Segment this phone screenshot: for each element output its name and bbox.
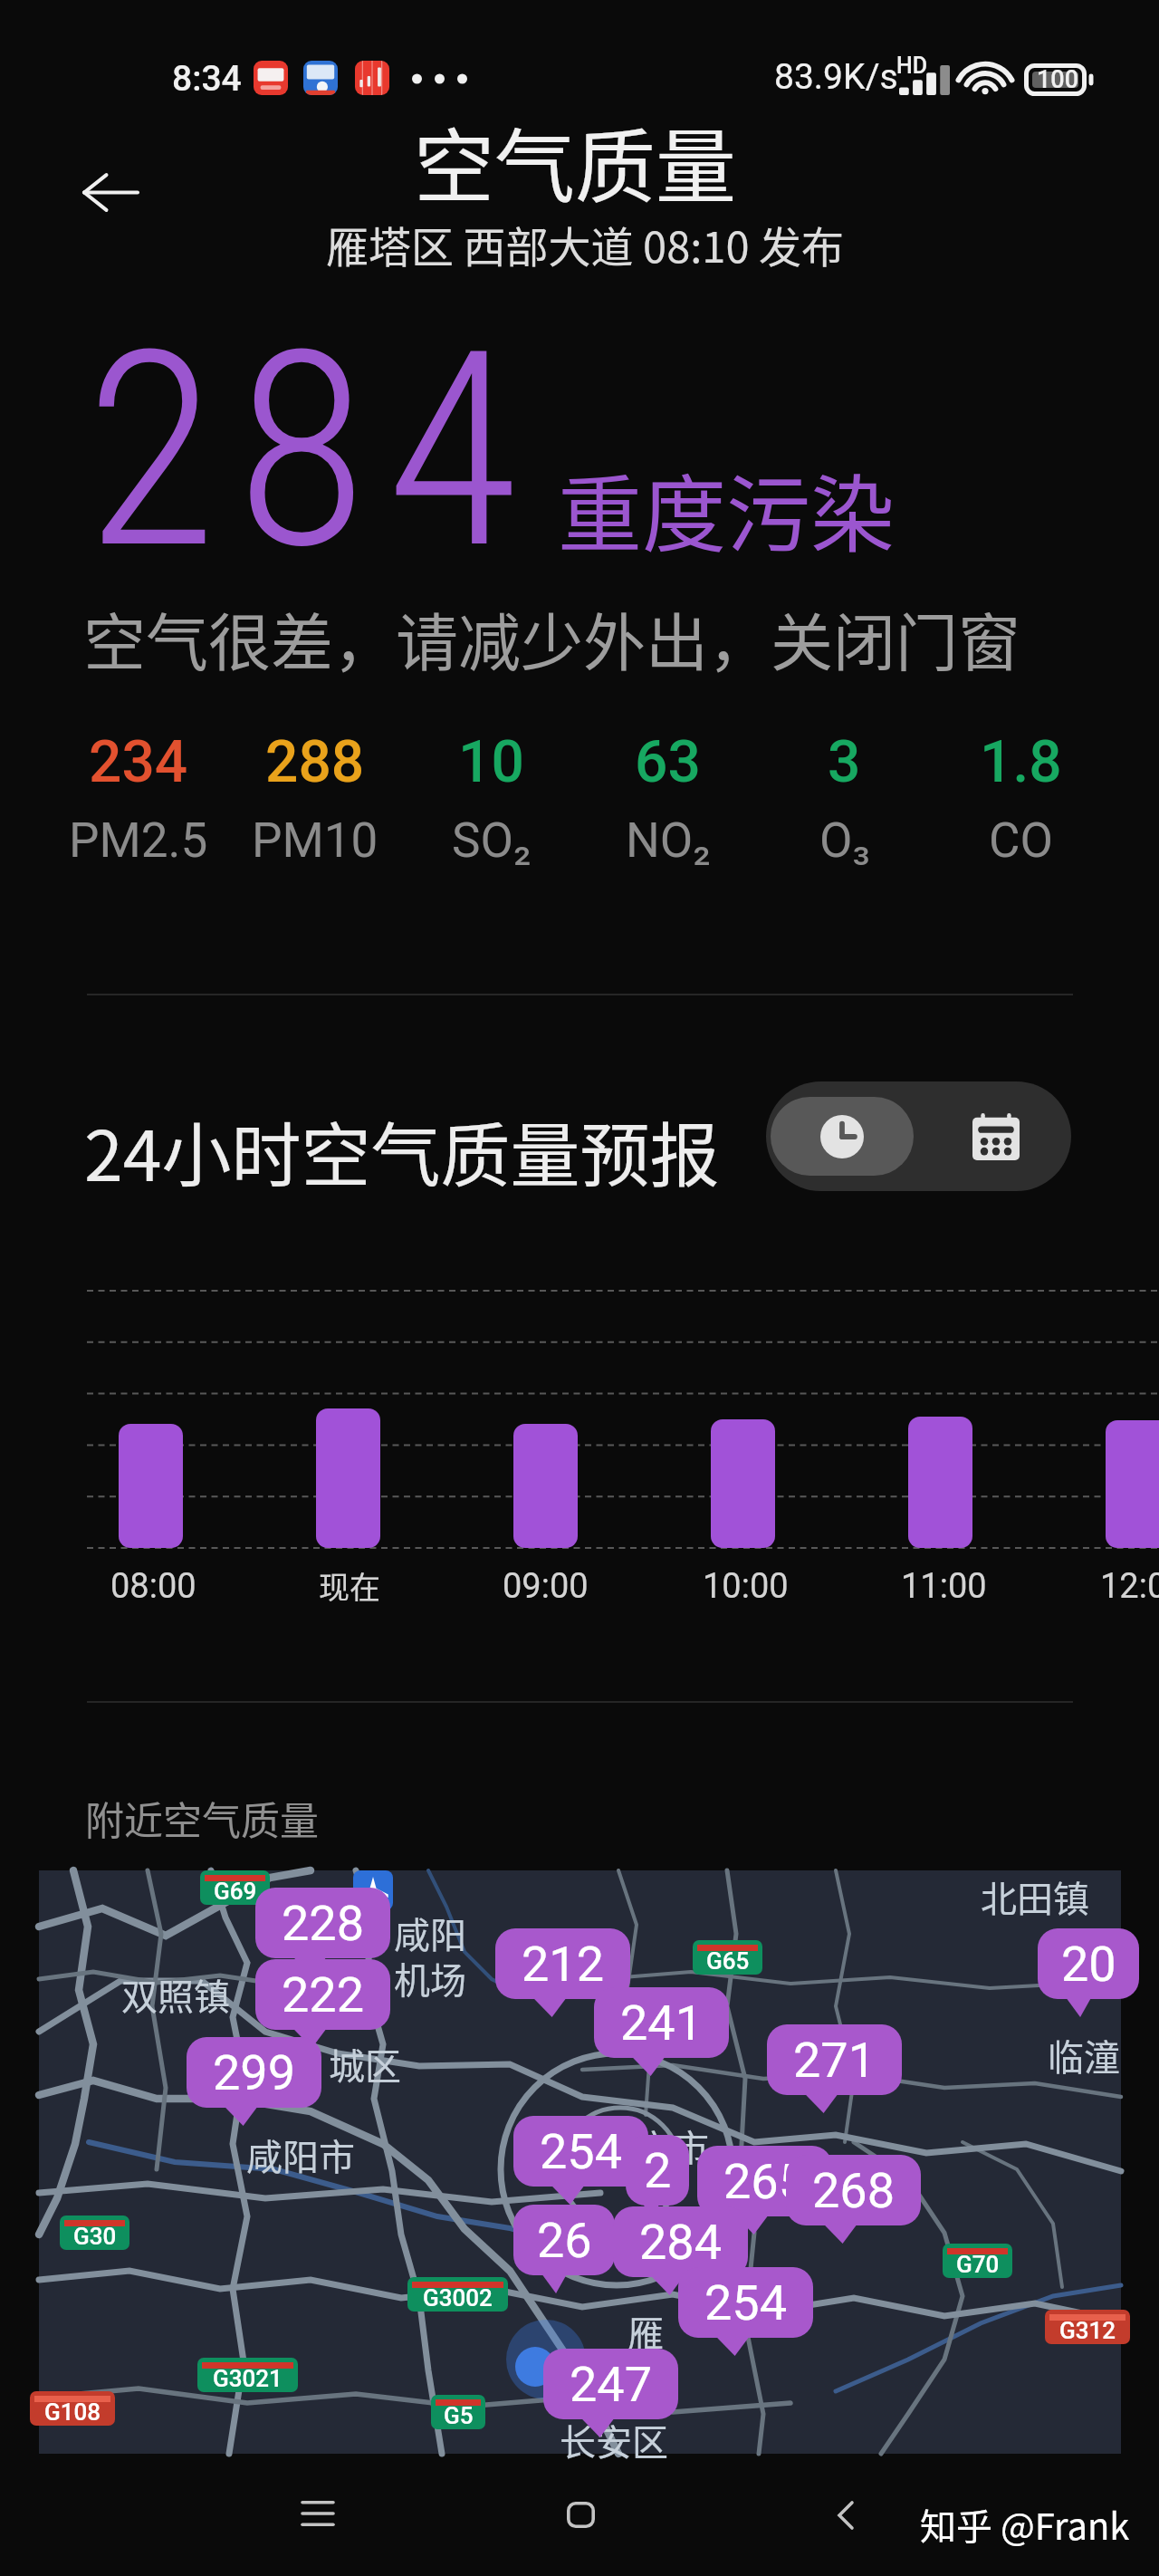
button[interactable]: Back xyxy=(56,138,165,246)
button[interactable]: AQI 254 xyxy=(678,2267,813,2356)
staticText: HD xyxy=(896,53,928,79)
staticText: 2 xyxy=(644,2142,672,2199)
staticText: 空气质量 xyxy=(414,102,736,219)
staticText: 24小时空气质量预报 xyxy=(84,1101,720,1201)
staticText: 268 xyxy=(812,2162,896,2219)
staticText: 222 xyxy=(282,1966,365,2023)
staticText: G69 xyxy=(214,1878,257,1905)
staticText: 3 xyxy=(828,728,861,796)
button[interactable]: AQI 228 xyxy=(255,1888,390,1976)
staticText: PM10 xyxy=(252,812,378,869)
staticText: 63 xyxy=(635,728,701,796)
staticText: 8:34 xyxy=(172,58,242,100)
staticText: G108 xyxy=(44,2398,101,2426)
staticText: 12:0 xyxy=(1100,1566,1159,1607)
staticText: 228 xyxy=(282,1895,365,1952)
button[interactable]: Back xyxy=(791,2461,900,2570)
staticText: 08:00 xyxy=(110,1566,196,1607)
button[interactable]: AQI 271 xyxy=(767,2024,902,2113)
button[interactable]: AQI 254 xyxy=(513,2116,648,2205)
staticText: 254 xyxy=(540,2123,623,2180)
staticText: 299 xyxy=(213,2044,296,2101)
button[interactable]: AQI 247 xyxy=(543,2349,678,2437)
staticText: 知乎 @Frank xyxy=(920,2498,1130,2551)
button[interactable]: AQI 284 xyxy=(613,2206,748,2295)
staticText: 咸阳市 xyxy=(246,2129,355,2181)
staticText: 20 xyxy=(1061,1936,1116,1993)
staticText: 265 xyxy=(723,2153,807,2210)
staticText: 重度污染 xyxy=(558,447,895,570)
staticText: 241 xyxy=(620,1994,704,2052)
button[interactable]: Nearby air quality map xyxy=(39,1870,1121,2454)
staticText: 咸阳 xyxy=(394,1907,466,1959)
staticText: 雁 xyxy=(627,2305,664,2358)
staticText: 空气很差，请减少外出，关闭门窗 xyxy=(83,593,1020,684)
button[interactable]: Daily forecast xyxy=(924,1097,1067,1176)
staticText: 10:00 xyxy=(703,1566,789,1607)
button[interactable]: AQI 222 xyxy=(255,1959,390,2048)
button[interactable]: AQI 212 xyxy=(495,1928,630,2017)
button[interactable]: AQI 299 xyxy=(187,2037,321,2126)
staticText: 长安区 xyxy=(560,2414,668,2466)
staticText: NO₂ xyxy=(626,812,711,869)
staticText: 双照镇 xyxy=(121,1968,230,2021)
staticText: 254 xyxy=(704,2274,788,2331)
staticText: 284 xyxy=(85,293,538,610)
staticText: 10 xyxy=(458,728,524,796)
staticText: PM2.5 xyxy=(69,812,208,869)
staticText: 11:00 xyxy=(901,1566,987,1607)
button[interactable]: AQI 268 xyxy=(786,2155,921,2244)
staticText: G312 xyxy=(1059,2317,1116,2344)
button[interactable]: Menu xyxy=(263,2459,372,2568)
staticText: O₃ xyxy=(819,812,870,869)
staticText: 271 xyxy=(793,2032,876,2089)
staticText: 临潼 xyxy=(1048,2029,1120,2081)
staticText: 09:00 xyxy=(503,1566,589,1607)
button[interactable]: AQI 20 xyxy=(1038,1928,1139,2017)
staticText: G5 xyxy=(444,2402,474,2429)
staticText: 北田镇 xyxy=(981,1870,1089,1923)
staticText: 附近空气质量 xyxy=(85,1790,319,1846)
staticText: 234 xyxy=(89,728,188,796)
staticText: 现在 xyxy=(319,1563,380,1608)
staticText: 西安市 xyxy=(600,2119,709,2172)
button[interactable]: AQI 2 xyxy=(626,2135,689,2224)
staticText: G65 xyxy=(706,1947,750,1975)
button[interactable]: AQI 265 xyxy=(697,2146,832,2235)
staticText: 雁塔区 西部大道 08:10 发布 xyxy=(326,213,844,274)
staticText: 212 xyxy=(522,1936,605,1993)
button[interactable]: Home xyxy=(526,2460,635,2569)
button[interactable]: AQI 26 xyxy=(513,2205,615,2293)
staticText: 83.9K/s xyxy=(774,56,898,98)
staticText: 247 xyxy=(570,2356,653,2413)
staticText: CO xyxy=(989,812,1053,869)
staticText: 284 xyxy=(639,2214,723,2271)
staticText: 100 xyxy=(1037,65,1079,94)
staticText: 1.8 xyxy=(980,728,1062,796)
staticText: 26 xyxy=(537,2212,592,2269)
staticText: 城区 xyxy=(329,2038,401,2091)
staticText: G3021 xyxy=(213,2365,283,2392)
button[interactable]: AQI 241 xyxy=(594,1987,729,2076)
staticText: SO₂ xyxy=(452,812,532,869)
staticText: G3002 xyxy=(423,2284,493,2312)
staticText: G30 xyxy=(73,2223,117,2250)
staticText: 机场 xyxy=(394,1952,466,2004)
staticText: G70 xyxy=(956,2251,1000,2278)
staticText: 288 xyxy=(265,728,365,796)
button[interactable]: Hourly forecast xyxy=(771,1097,914,1176)
